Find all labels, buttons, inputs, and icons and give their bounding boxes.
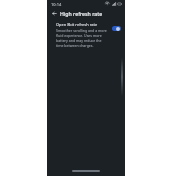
staticText: Open 8bit refresh rate (56, 22, 98, 27)
staticText: High refresh rate (60, 10, 103, 17)
staticText: 10:14 (51, 2, 62, 7)
button[interactable]: Navigate up (50, 9, 58, 17)
button[interactable]: High refresh rate toggle (111, 25, 121, 32)
button[interactable]: Open 8bit refresh rate (47, 20, 125, 51)
staticText: Smoother scrolling and a more fluid expe… (56, 28, 109, 48)
